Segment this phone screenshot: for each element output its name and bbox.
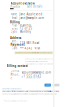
staticText: VAT is applied for EU registered compani…	[24, 63, 53, 65]
staticText: Name	[10, 12, 17, 16]
staticText: Save	[46, 84, 50, 86]
button[interactable]: Need help? Contact support	[2, 88, 21, 90]
staticText: Billing	[10, 20, 20, 24]
staticText: Cycle	[10, 30, 17, 33]
staticText: Monthly	[19, 30, 30, 33]
staticText: © 2025 Example, Inc. Terms Privacy	[4, 100, 28, 102]
staticText: 12 of 25	[19, 27, 32, 30]
staticText: Seats	[11, 27, 17, 30]
staticText: •••• 4242 Visa	[19, 46, 39, 50]
staticText: Taxes are calculated at checkout where a…	[2, 93, 57, 95]
staticText: Need help? Contact support	[2, 88, 21, 90]
staticText: Account overview	[10, 2, 34, 5]
staticText: Updated 3 days ago	[26, 77, 40, 79]
staticText: Email	[11, 16, 17, 20]
staticText: Your subscription renews on 14 March 202…	[2, 90, 59, 92]
staticText: Invoices are issued at the start of each…	[24, 58, 53, 60]
staticText: Billing contact	[6, 64, 27, 68]
staticText: Jane Appleseed	[19, 12, 42, 16]
staticText: Address	[10, 36, 21, 40]
button[interactable]: Edit details	[27, 5, 42, 8]
staticText: 118 Mill Road	[19, 41, 39, 45]
staticText: +1 555 0142	[21, 75, 41, 78]
staticText: Edit details	[27, 5, 42, 8]
staticText: and emailed to the billing contact on fi…	[24, 61, 47, 62]
staticText: Street	[11, 39, 17, 46]
staticText: accounts@example.com	[21, 71, 50, 74]
staticText: Changes are saved automatically to your …	[15, 52, 52, 54]
staticText: Profile	[10, 5, 20, 9]
staticText: Team Pro	[19, 24, 31, 27]
button[interactable]: Cancel	[52, 84, 60, 87]
button[interactable]: Save	[44, 84, 51, 87]
staticText: Plan	[11, 24, 17, 27]
staticText: Card	[11, 46, 17, 50]
staticText: Phone	[10, 73, 19, 80]
staticText: Payment	[10, 43, 24, 46]
staticText: Cancel	[53, 84, 58, 86]
staticText: Contact	[10, 69, 19, 76]
staticText: jane@example.com	[19, 16, 43, 20]
